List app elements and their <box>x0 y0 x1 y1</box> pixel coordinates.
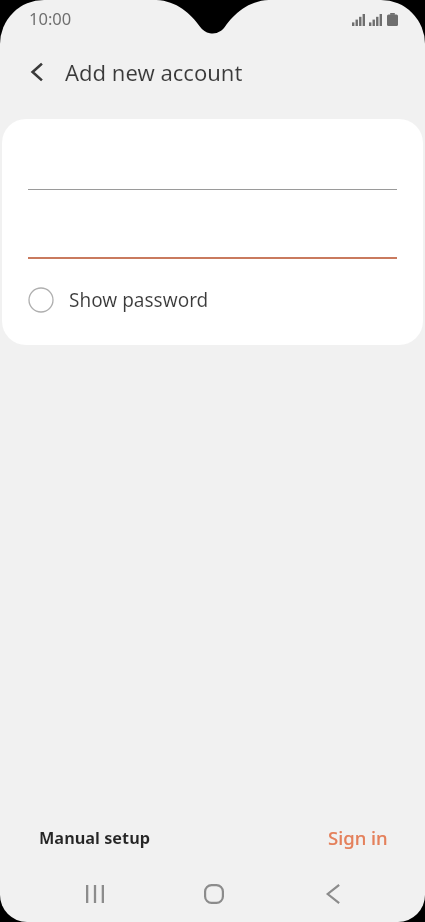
button[interactable]: Recent apps <box>55 866 135 922</box>
button[interactable]: Back <box>293 866 373 922</box>
button[interactable]: Back <box>13 48 61 96</box>
button[interactable]: Show password <box>28 287 209 313</box>
staticText: Add new account <box>65 57 243 87</box>
button[interactable]: Sign in <box>312 802 425 860</box>
button[interactable]: Manual setup <box>0 804 167 859</box>
staticText: Show password <box>69 287 209 313</box>
staticText: 10:00 <box>29 7 72 29</box>
staticText: Manual setup <box>39 827 151 849</box>
staticText: Sign in <box>328 825 388 850</box>
button[interactable]: Home <box>174 866 254 922</box>
